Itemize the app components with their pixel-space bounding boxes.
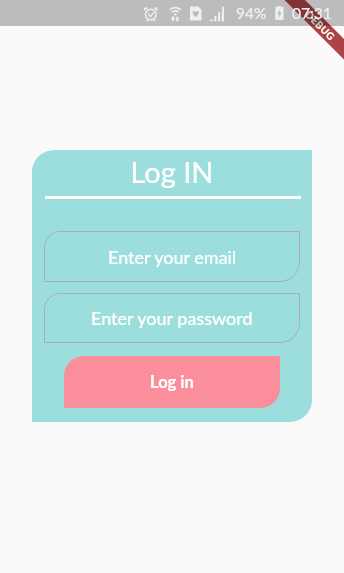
button[interactable]: Enter your email: [44, 231, 300, 282]
button[interactable]: Log in: [64, 356, 280, 408]
button[interactable]: Enter your password: [44, 293, 300, 343]
staticText: Enter your email: [108, 246, 237, 268]
staticText: Enter your password: [91, 307, 253, 329]
staticText: 94%: [236, 4, 267, 23]
staticText: Log IN: [32, 154, 312, 189]
staticText: Log in: [150, 372, 194, 392]
staticText: DEBUG: [303, 8, 338, 43]
staticText: 07:31: [292, 4, 332, 23]
